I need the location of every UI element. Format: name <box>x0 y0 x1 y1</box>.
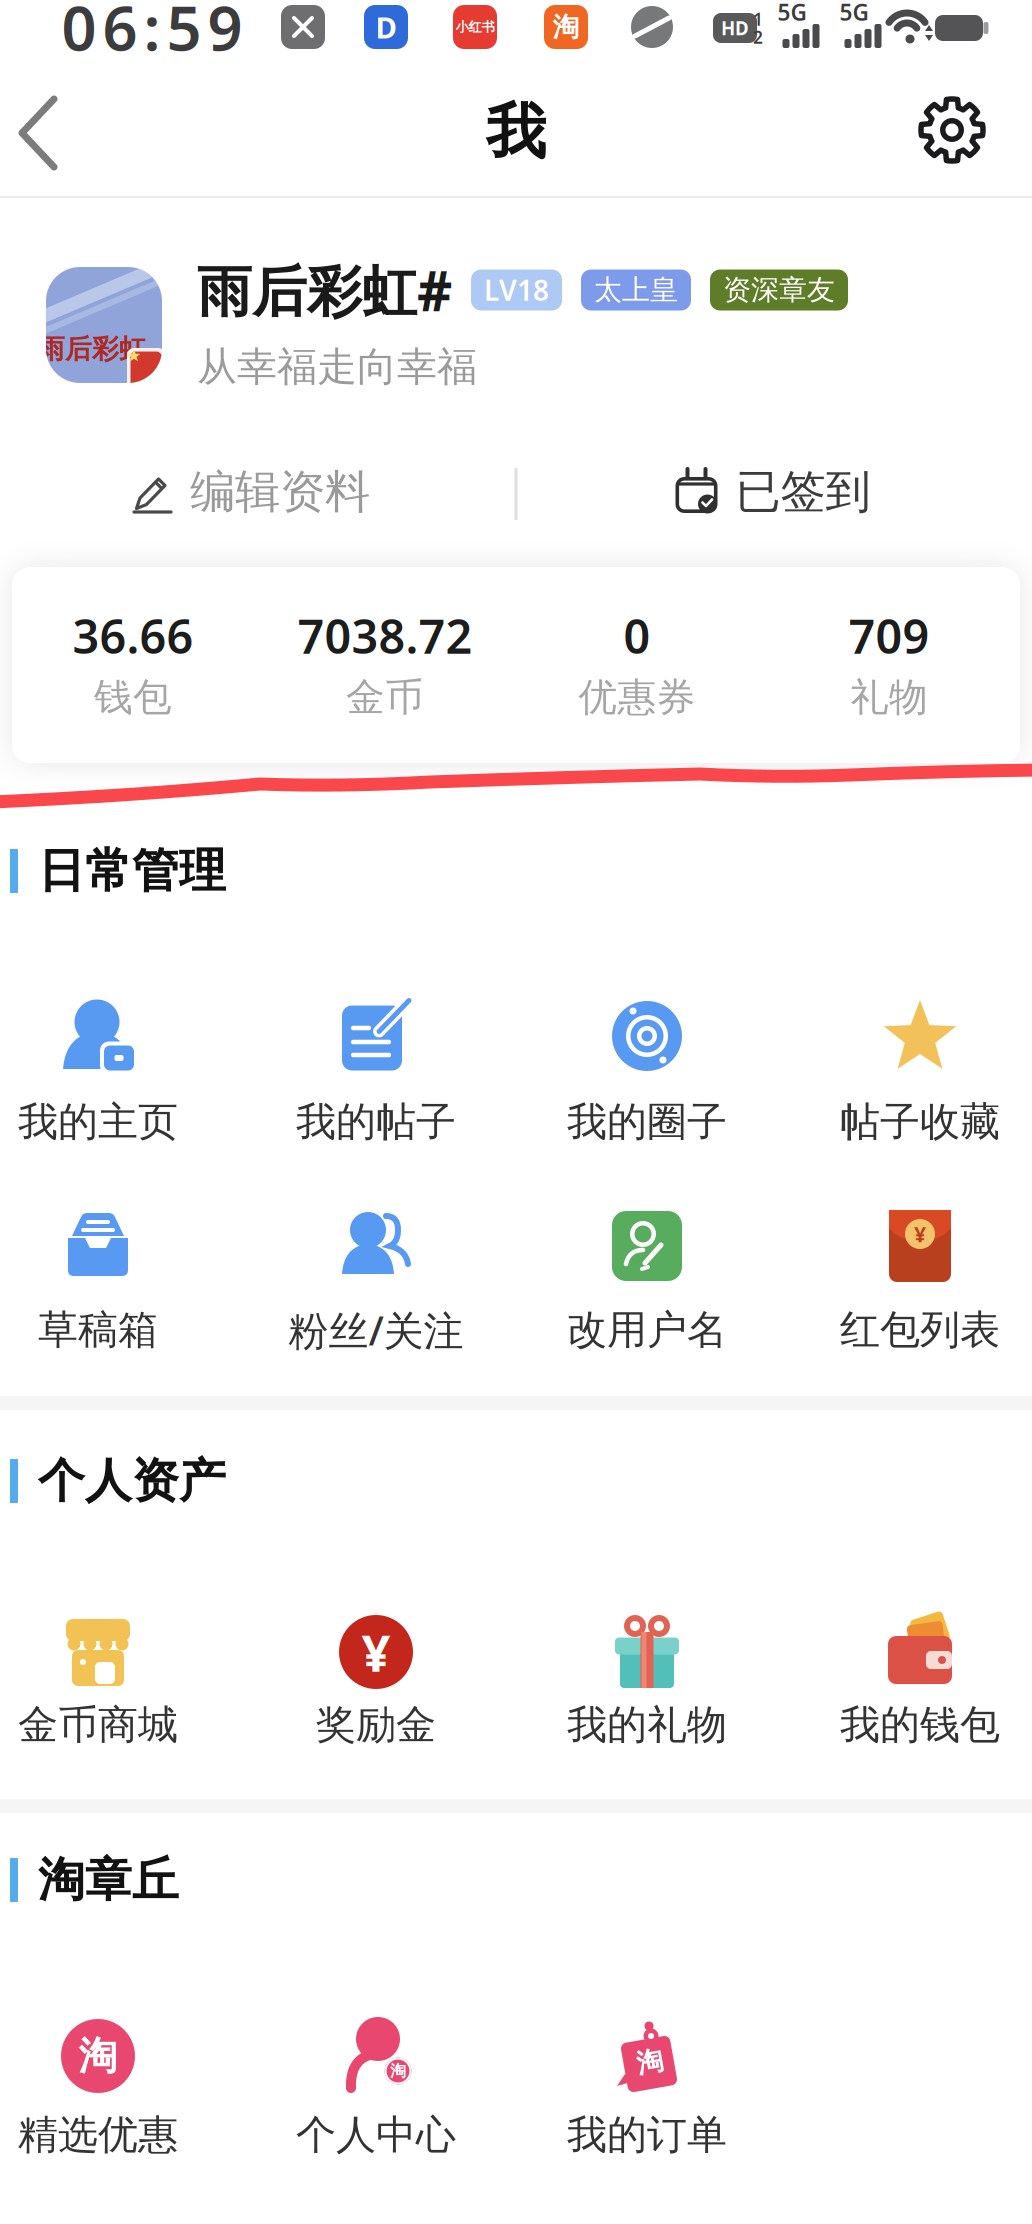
button[interactable]: 36.66 <box>8 469 258 665</box>
staticText: LV18 <box>484 271 549 309</box>
staticText: 帖子收藏 <box>840 1097 1000 1146</box>
staticText: 太上皇 <box>594 273 678 307</box>
staticText: 5G <box>839 0 868 27</box>
staticText: 粉丝/关注 <box>288 1303 463 1356</box>
staticText: 小红书 <box>455 19 494 35</box>
staticText: 淘 <box>78 2032 117 2080</box>
button[interactable]: Settings <box>913 91 991 169</box>
button[interactable]: 我的礼物 <box>522 1614 772 1751</box>
staticText: 淘章丘 <box>38 1851 179 1909</box>
staticText: 钱包 <box>94 674 172 721</box>
staticText: 淘 <box>552 11 579 43</box>
staticText: 我 <box>486 95 546 169</box>
staticText: 0 <box>623 605 650 667</box>
staticText: 礼物 <box>850 674 928 721</box>
staticText: 红包列表 <box>840 1305 1000 1354</box>
staticText: 06:59 <box>61 0 242 68</box>
staticText: 从幸福走向幸福 <box>197 342 477 391</box>
button[interactable]: 我的圈子 <box>522 998 772 1148</box>
staticText: ¥ <box>361 1618 390 1686</box>
staticText: 我的主页 <box>18 1097 178 1146</box>
button[interactable]: 改用户名 <box>522 1208 772 1356</box>
button[interactable]: ¥ <box>795 1208 1032 1356</box>
button[interactable]: 草稿箱 <box>0 1208 223 1356</box>
button[interactable]: 7038.72 <box>260 469 510 665</box>
button[interactable]: 0 <box>512 469 762 665</box>
staticText: HD <box>721 16 749 40</box>
button[interactable]: 我的主页 <box>0 998 223 1148</box>
button[interactable]: 淘 <box>522 2018 772 2161</box>
staticText: 奖励金 <box>316 1700 436 1749</box>
staticText: 优惠券 <box>578 674 695 721</box>
button[interactable]: Back <box>12 93 68 173</box>
button[interactable]: 编辑资料 <box>130 464 370 520</box>
staticText: 精选优惠 <box>18 2110 178 2159</box>
staticText: 雨后彩虹 <box>38 333 146 365</box>
staticText: 7038.72 <box>297 605 472 667</box>
button[interactable]: 我的帖子 <box>251 998 501 1148</box>
staticText: 淘 <box>636 2046 663 2078</box>
staticText: 709 <box>848 605 929 667</box>
button[interactable]: 已签到 <box>673 464 870 520</box>
staticText: 36.66 <box>72 605 193 667</box>
staticText: 草稿箱 <box>38 1305 158 1354</box>
staticText: ¥ <box>914 1220 926 1248</box>
staticText: 编辑资料 <box>190 464 370 520</box>
staticText: 金币商城 <box>18 1700 178 1749</box>
staticText: 个人中心 <box>296 2110 456 2159</box>
button[interactable]: 金币商城 <box>0 1614 223 1751</box>
staticText: 雨后彩虹# <box>197 254 452 326</box>
staticText: 我的帖子 <box>296 1097 456 1146</box>
staticText: 2 <box>753 25 763 48</box>
button[interactable]: 淘 <box>0 2018 223 2161</box>
button[interactable]: 头像 <box>46 267 162 383</box>
staticText: 我的订单 <box>567 2110 727 2159</box>
staticText: 我的钱包 <box>840 1700 1000 1749</box>
button[interactable]: 淘 <box>251 2018 501 2161</box>
staticText: 5G <box>777 0 806 27</box>
button[interactable]: 709 <box>764 469 1014 665</box>
staticText: 日常管理 <box>38 842 226 900</box>
staticText: 淘 <box>390 2061 406 2081</box>
button[interactable]: 粉丝/关注 <box>251 1208 501 1356</box>
staticText: D <box>375 7 396 46</box>
staticText: 1 <box>753 7 763 30</box>
button[interactable]: 我的钱包 <box>795 1614 1032 1751</box>
staticText: 金币 <box>346 674 424 721</box>
staticText: 改用户名 <box>567 1305 727 1354</box>
staticText: 资深章友 <box>723 273 835 307</box>
button[interactable]: ¥ <box>251 1614 501 1751</box>
staticText: 我的圈子 <box>567 1097 727 1146</box>
staticText: 已签到 <box>735 464 870 520</box>
staticText: 个人资产 <box>38 1452 226 1510</box>
staticText: 我的礼物 <box>567 1700 727 1749</box>
button[interactable]: 帖子收藏 <box>795 998 1032 1148</box>
